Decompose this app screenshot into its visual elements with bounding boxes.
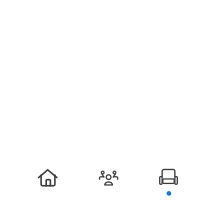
button[interactable]: Community (80, 163, 138, 200)
button[interactable]: Furniture (140, 161, 198, 200)
button[interactable]: Home (19, 162, 77, 200)
